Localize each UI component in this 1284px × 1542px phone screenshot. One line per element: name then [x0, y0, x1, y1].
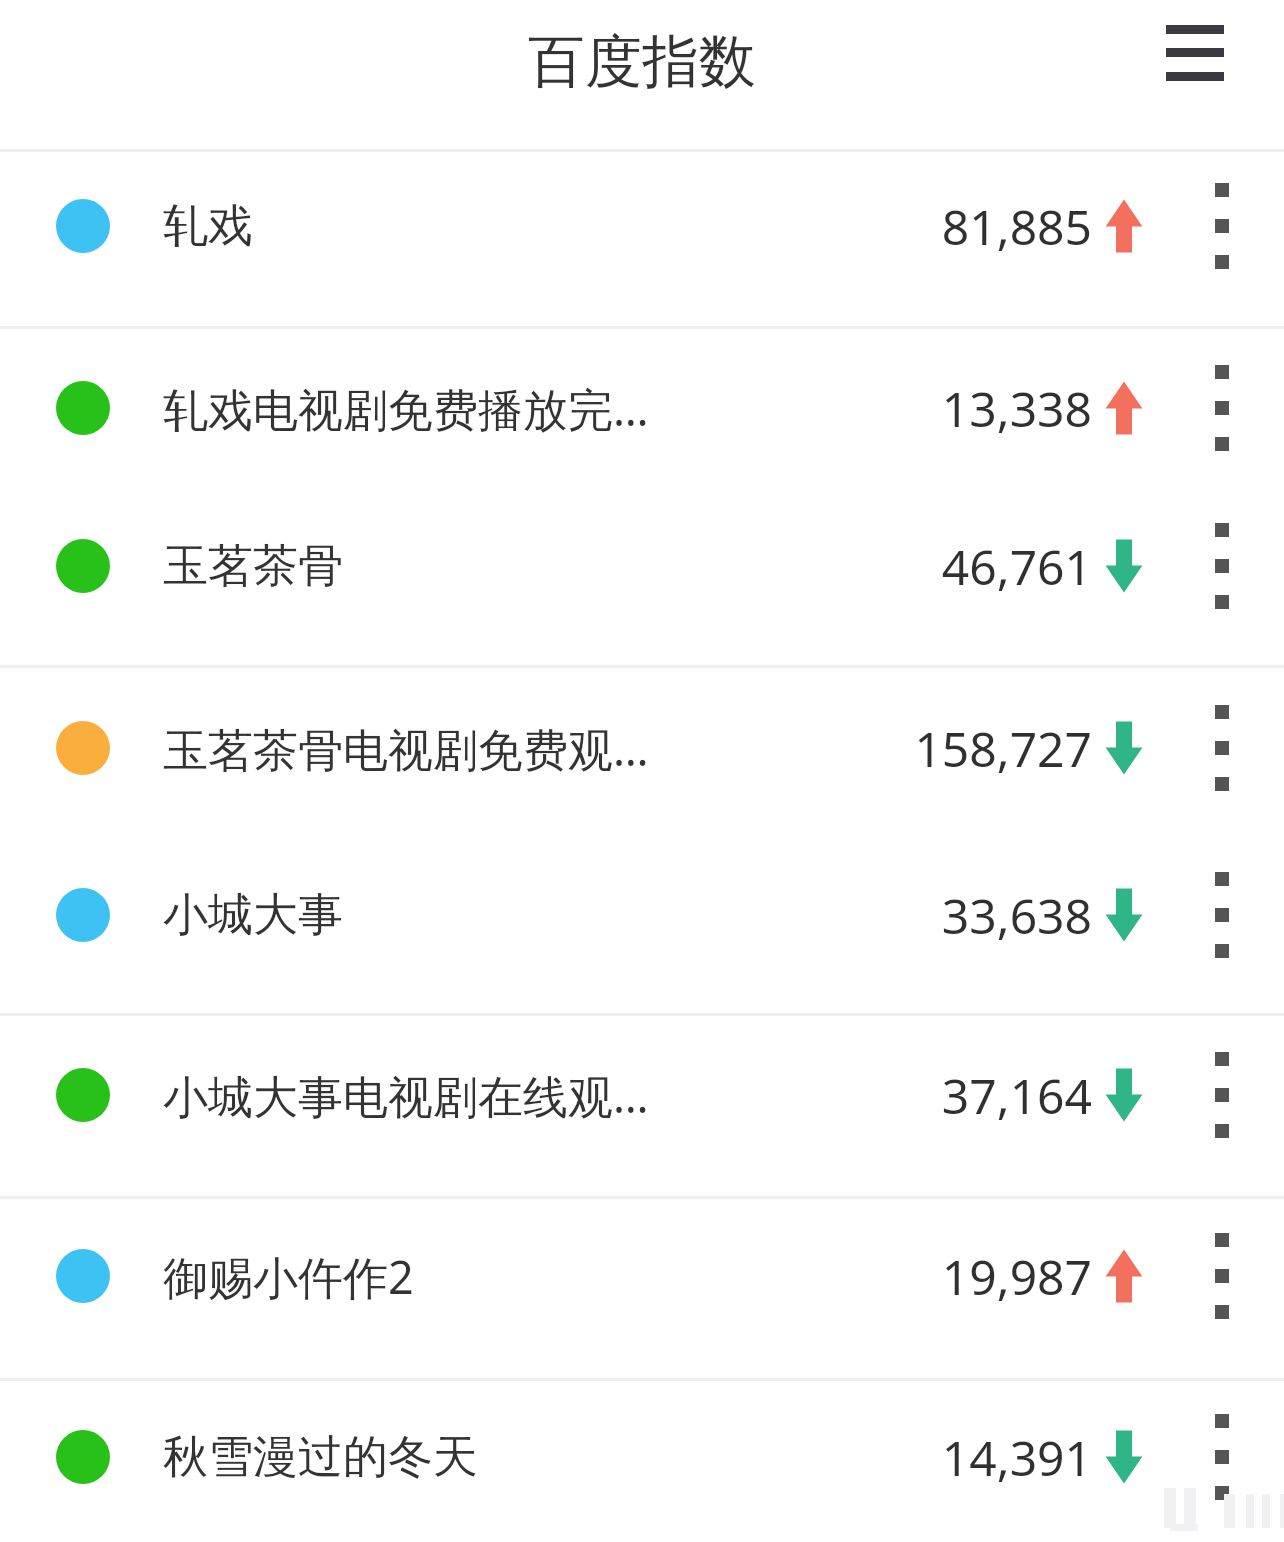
staticText: 秋雪漫过的冬天	[163, 1429, 478, 1486]
staticText: 小城大事	[163, 887, 343, 944]
button[interactable]: More options	[1192, 693, 1252, 803]
staticText: 13,338	[941, 376, 1092, 441]
button[interactable]: More options	[1192, 171, 1252, 281]
button[interactable]: More options	[1192, 353, 1252, 463]
staticText: 81,885	[941, 194, 1092, 259]
staticText: 玉茗茶骨电视剧免费观…	[163, 718, 649, 779]
button[interactable]: 小城大事	[0, 840, 1284, 990]
button[interactable]: More options	[1192, 1040, 1252, 1150]
staticText: 33,638	[941, 883, 1092, 948]
staticText: 玉茗茶骨	[163, 538, 343, 595]
button[interactable]: 小城大事电视剧在线观…	[0, 1020, 1284, 1170]
staticText: 御赐小仵作2	[163, 1246, 414, 1307]
staticText: 轧戏	[163, 198, 253, 255]
staticText: 轧戏电视剧免费播放完…	[163, 378, 649, 439]
staticText: 14,391	[941, 1425, 1092, 1490]
button[interactable]: 玉茗茶骨电视剧免费观…	[0, 673, 1284, 823]
button[interactable]: 御赐小仵作2	[0, 1201, 1284, 1351]
button[interactable]: More options	[1192, 511, 1252, 621]
staticText: 百度指数	[528, 26, 756, 98]
staticText: 37,164	[941, 1063, 1092, 1128]
staticText: 19,987	[941, 1244, 1092, 1309]
staticText: 158,727	[914, 716, 1092, 781]
staticText: 46,761	[941, 534, 1092, 599]
button[interactable]: 轧戏电视剧免费播放完…	[0, 333, 1284, 483]
button[interactable]: More options	[1192, 860, 1252, 970]
button[interactable]: 玉茗茶骨	[0, 491, 1284, 641]
button[interactable]: 秋雪漫过的冬天	[0, 1382, 1284, 1532]
button[interactable]: More options	[1192, 1221, 1252, 1331]
button[interactable]: 轧戏	[0, 151, 1284, 301]
button[interactable]: More options	[1192, 1402, 1252, 1512]
button[interactable]: Menu	[1162, 4, 1242, 94]
staticText: 小城大事电视剧在线观…	[163, 1065, 649, 1126]
